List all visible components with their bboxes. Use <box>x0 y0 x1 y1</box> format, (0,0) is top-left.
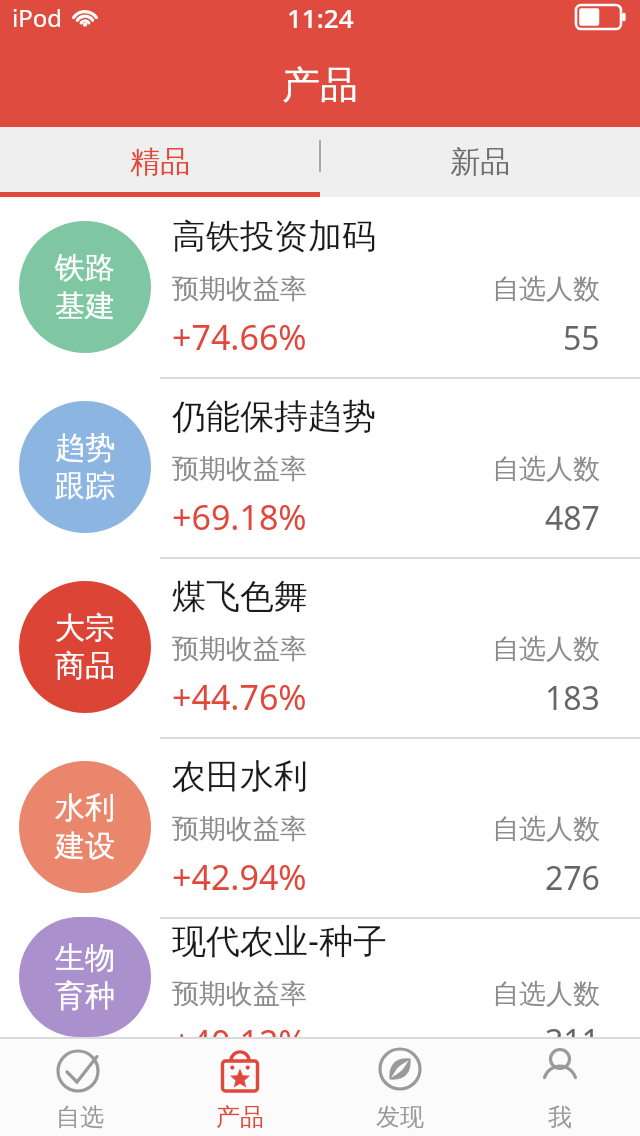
button[interactable]: 生物 <box>0 917 640 1037</box>
staticText: 高铁投资加码 <box>172 215 376 258</box>
staticText: 预期收益率 <box>172 452 307 486</box>
staticText: 现代农业-种子 <box>172 917 387 963</box>
staticText: +44.76% <box>172 674 307 720</box>
button[interactable]: 大宗 <box>0 557 640 737</box>
staticText: 发现 <box>376 1102 424 1132</box>
button[interactable]: 趋势 <box>0 377 640 557</box>
staticText: 农田水利 <box>172 755 308 798</box>
staticText: 311 <box>545 1019 600 1037</box>
staticText: 预期收益率 <box>172 977 307 1011</box>
staticText: 276 <box>545 856 600 900</box>
staticText: 自选 <box>56 1102 104 1132</box>
staticText: 生物 <box>55 939 115 977</box>
staticText: 自选人数 <box>492 452 600 486</box>
staticText: 产品 <box>282 61 358 109</box>
staticText: 预期收益率 <box>172 812 307 846</box>
staticText: 487 <box>545 496 600 540</box>
staticText: 自选人数 <box>492 632 600 666</box>
staticText: 产品 <box>216 1102 264 1132</box>
button[interactable]: 发现 <box>320 1039 480 1136</box>
staticText: 新品 <box>450 143 510 181</box>
staticText: 育种 <box>55 977 115 1015</box>
staticText: +74.66% <box>172 314 307 360</box>
staticText: 预期收益率 <box>172 272 307 306</box>
staticText: 趋势 <box>55 429 115 467</box>
staticText: +42.94% <box>172 854 307 900</box>
staticText: 183 <box>545 676 600 720</box>
staticText: 水利 <box>55 789 115 827</box>
staticText: 11:24 <box>287 0 354 34</box>
staticText: 自选人数 <box>492 812 600 846</box>
staticText: 自选人数 <box>492 977 600 1011</box>
staticText: 我 <box>548 1102 572 1132</box>
button[interactable]: 自选 <box>0 1039 160 1136</box>
staticText: 建设 <box>55 827 115 865</box>
staticText: +40.12% <box>172 1019 307 1037</box>
button[interactable]: 精品 <box>0 127 320 197</box>
button[interactable]: 产品 <box>160 1039 320 1136</box>
staticText: 精品 <box>130 143 190 181</box>
staticText: 铁路 <box>55 249 115 287</box>
staticText: 55 <box>563 316 600 360</box>
staticText: 自选人数 <box>492 272 600 306</box>
staticText: 预期收益率 <box>172 632 307 666</box>
staticText: 跟踪 <box>55 467 115 505</box>
button[interactable]: 我 <box>480 1039 640 1136</box>
button[interactable]: 水利 <box>0 737 640 917</box>
staticText: 商品 <box>55 647 115 685</box>
staticText: iPod <box>12 1 62 34</box>
staticText: 煤飞色舞 <box>172 575 308 618</box>
staticText: 大宗 <box>55 609 115 647</box>
button[interactable]: 新品 <box>320 127 640 197</box>
staticText: +69.18% <box>172 494 307 540</box>
staticText: 仍能保持趋势 <box>172 395 376 438</box>
button[interactable]: 铁路 <box>0 197 640 377</box>
staticText: 基建 <box>55 287 115 325</box>
